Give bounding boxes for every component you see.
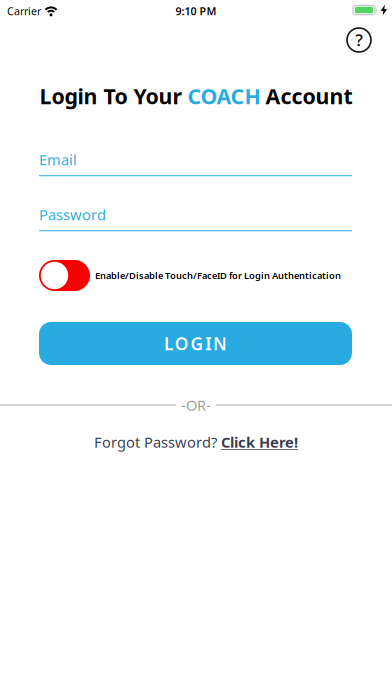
staticText: ? bbox=[355, 29, 362, 51]
staticText: 9:10 PM bbox=[175, 4, 216, 18]
staticText: Forgot Password? bbox=[94, 432, 217, 452]
staticText: Password bbox=[39, 205, 106, 224]
button[interactable]: Click Here! bbox=[221, 432, 298, 452]
staticText: Carrier bbox=[7, 4, 41, 18]
button[interactable] bbox=[39, 260, 90, 291]
button[interactable]: Email bbox=[39, 150, 352, 176]
button[interactable]: Password bbox=[39, 205, 352, 231]
staticText: Account bbox=[265, 82, 352, 110]
staticText: Login To Your bbox=[39, 82, 182, 110]
button[interactable]: ? bbox=[346, 27, 372, 53]
staticText: Click Here! bbox=[221, 432, 298, 452]
staticText: COACH bbox=[187, 82, 260, 110]
staticText: LOGIN bbox=[164, 332, 227, 355]
staticText: Email bbox=[39, 150, 77, 169]
button[interactable]: LOGIN bbox=[39, 322, 352, 365]
staticText: -OR- bbox=[181, 395, 211, 415]
staticText: Enable/Disable Touch/FaceID for Login Au… bbox=[95, 269, 341, 282]
